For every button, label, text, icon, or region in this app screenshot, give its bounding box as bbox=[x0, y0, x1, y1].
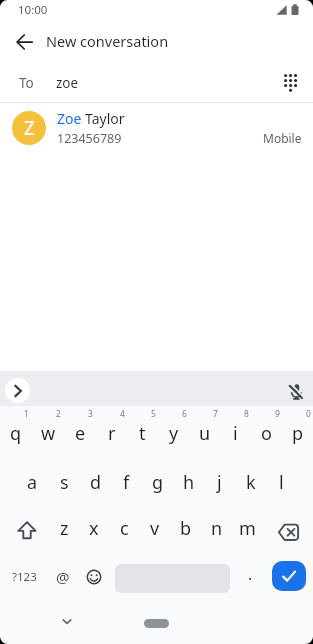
button[interactable]: a bbox=[16, 458, 48, 506]
staticText: To bbox=[19, 74, 34, 92]
staticText: i bbox=[233, 421, 238, 446]
staticText: 10:00 bbox=[18, 2, 48, 18]
button[interactable]: z bbox=[49, 504, 79, 552]
button[interactable]: u bbox=[189, 409, 220, 457]
staticText: 6 bbox=[182, 408, 187, 420]
button[interactable]: k bbox=[235, 458, 266, 506]
button[interactable] bbox=[263, 504, 313, 552]
staticText: zoe bbox=[56, 74, 79, 92]
staticText: 2 bbox=[56, 408, 61, 420]
staticText: ?123 bbox=[12, 569, 37, 585]
button[interactable]: x bbox=[79, 504, 109, 552]
staticText: 7 bbox=[213, 408, 218, 420]
button[interactable]: h bbox=[173, 458, 204, 506]
button[interactable]: l bbox=[266, 458, 297, 506]
staticText: . bbox=[248, 563, 253, 585]
button[interactable] bbox=[79, 553, 110, 601]
button[interactable] bbox=[284, 379, 308, 403]
staticText: Mobile bbox=[263, 130, 302, 146]
button[interactable]: y bbox=[158, 409, 189, 457]
button[interactable]: @ bbox=[48, 553, 79, 601]
staticText: b bbox=[180, 516, 192, 541]
staticText: 4 bbox=[120, 408, 125, 420]
button[interactable]: t bbox=[127, 409, 158, 457]
staticText: t bbox=[139, 421, 146, 446]
button[interactable]: m bbox=[232, 504, 263, 552]
staticText: 9 bbox=[275, 408, 280, 420]
button[interactable] bbox=[5, 378, 30, 403]
button[interactable]: b bbox=[170, 504, 201, 552]
staticText: d bbox=[90, 470, 102, 495]
staticText: c bbox=[120, 516, 129, 541]
button[interactable] bbox=[144, 619, 169, 628]
staticText: Zoe Taylor bbox=[57, 109, 125, 128]
staticText: p bbox=[292, 421, 304, 446]
button[interactable]: Z bbox=[0, 103, 313, 155]
button[interactable]: o bbox=[251, 409, 282, 457]
button[interactable]: w bbox=[32, 409, 64, 457]
staticText: s bbox=[60, 470, 69, 495]
staticText: 1 bbox=[24, 408, 29, 420]
staticText: g bbox=[152, 470, 164, 495]
button[interactable] bbox=[266, 553, 313, 601]
button[interactable]: n bbox=[201, 504, 232, 552]
button[interactable]: . bbox=[235, 553, 266, 601]
staticText: f bbox=[123, 470, 130, 495]
staticText: u bbox=[199, 421, 211, 446]
button[interactable] bbox=[9, 26, 41, 58]
staticText: 3 bbox=[88, 408, 93, 420]
staticText: q bbox=[10, 421, 22, 446]
staticText: 8 bbox=[244, 408, 249, 420]
staticText: m bbox=[239, 516, 256, 541]
staticText: a bbox=[27, 470, 38, 495]
button[interactable]: p bbox=[282, 409, 313, 457]
staticText: n bbox=[211, 516, 223, 541]
button[interactable]: f bbox=[111, 458, 142, 506]
button[interactable]: v bbox=[139, 504, 170, 552]
button[interactable]: d bbox=[80, 458, 111, 506]
staticText: o bbox=[261, 421, 272, 446]
button[interactable]: ?123 bbox=[0, 553, 48, 601]
button[interactable]: c bbox=[109, 504, 139, 552]
staticText: e bbox=[75, 421, 86, 446]
staticText: Z bbox=[24, 115, 35, 141]
button[interactable]: i bbox=[220, 409, 251, 457]
button[interactable]: q bbox=[0, 409, 32, 457]
staticText: j bbox=[217, 470, 222, 495]
staticText: v bbox=[150, 516, 160, 541]
button[interactable]: j bbox=[204, 458, 235, 506]
button[interactable]: e bbox=[64, 409, 96, 457]
staticText: z bbox=[60, 516, 69, 541]
staticText: h bbox=[183, 470, 195, 495]
staticText: 123456789 bbox=[57, 130, 122, 147]
staticText: New conversation bbox=[46, 31, 169, 51]
button[interactable]: r bbox=[96, 409, 127, 457]
staticText: w bbox=[41, 421, 56, 446]
button[interactable]: g bbox=[142, 458, 173, 506]
staticText: 5 bbox=[151, 408, 156, 420]
button[interactable]: s bbox=[48, 458, 80, 506]
staticText: l bbox=[279, 470, 284, 495]
staticText: 0 bbox=[306, 408, 311, 420]
button[interactable] bbox=[0, 504, 49, 552]
staticText: @ bbox=[56, 567, 70, 587]
button[interactable] bbox=[55, 608, 79, 632]
staticText: x bbox=[89, 516, 99, 541]
staticText: y bbox=[169, 421, 179, 446]
staticText: r bbox=[108, 421, 116, 446]
button[interactable]: To bbox=[0, 58, 313, 102]
staticText: k bbox=[246, 470, 256, 495]
button[interactable] bbox=[275, 67, 303, 95]
